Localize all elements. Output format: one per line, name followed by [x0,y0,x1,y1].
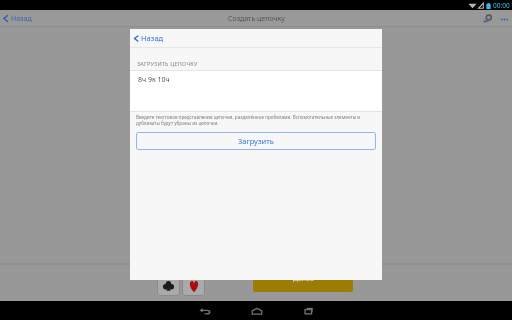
button[interactable]: Recent apps [301,303,316,318]
staticText: Назад [11,14,32,24]
staticText: Далее [293,274,314,284]
button[interactable]: Undo [481,13,493,25]
button[interactable]: Загрузить [136,132,376,150]
staticText: 00:00 [493,1,510,10]
staticText: 8ч 9к 10ч [138,75,170,85]
button[interactable]: Назад [133,29,164,47]
staticText: Назад [141,33,164,43]
button[interactable]: Назад [2,10,32,27]
staticText: Загрузить [238,136,274,146]
staticText: Создать цепочку [228,14,285,24]
staticText: Введите текстовое представление цепочки,… [136,114,374,126]
button[interactable]: More options [499,14,509,24]
button[interactable]: Clubs [157,272,180,296]
button[interactable]: Hearts [182,272,205,296]
staticText: ЗАГРУЗИТЬ ЦЕПОЧКУ [137,60,198,67]
button[interactable]: Back [197,303,212,318]
button[interactable]: Далее [253,274,353,292]
button[interactable]: Home [249,303,264,318]
